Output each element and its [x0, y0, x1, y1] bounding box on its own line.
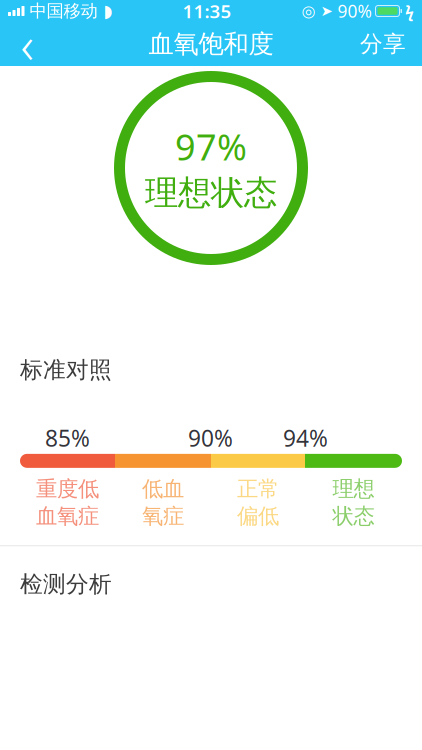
- staticText: 偏低: [237, 503, 279, 529]
- staticText: ➤: [320, 3, 332, 19]
- staticText: 状态: [332, 503, 374, 529]
- staticText: 标准对照: [20, 356, 112, 384]
- staticText: 检测分析: [20, 570, 112, 598]
- staticText: ϟ: [405, 0, 414, 22]
- staticText: ◎: [301, 2, 315, 20]
- button[interactable]: 分享: [344, 22, 422, 66]
- staticText: 血氧饱和度: [148, 28, 273, 59]
- staticText: 低血: [142, 476, 184, 502]
- staticText: 90%: [337, 0, 371, 22]
- staticText: 94%: [283, 423, 328, 453]
- staticText: 血氧症: [36, 503, 99, 529]
- staticText: 重度低: [36, 476, 99, 502]
- staticText: 理想: [332, 476, 374, 502]
- staticText: 中国移动: [29, 0, 97, 22]
- staticText: 97%: [175, 123, 247, 170]
- staticText: 85%: [45, 423, 90, 453]
- staticText: 氧症: [142, 503, 184, 529]
- staticText: ◗: [103, 1, 112, 21]
- staticText: 11:35: [182, 0, 231, 23]
- staticText: 90%: [188, 423, 233, 453]
- staticText: 理想状态: [145, 172, 277, 213]
- staticText: ‹: [20, 10, 33, 78]
- staticText: 分享: [360, 30, 406, 58]
- button[interactable]: 返回: [0, 22, 54, 66]
- staticText: 正常: [237, 476, 279, 502]
